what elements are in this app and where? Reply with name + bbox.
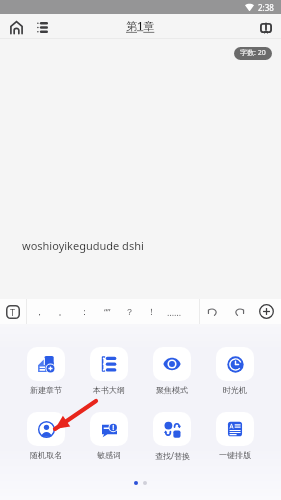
button[interactable]: 。 bbox=[52, 299, 72, 324]
staticText: 新建章节 bbox=[30, 385, 62, 395]
button[interactable]: ， bbox=[29, 299, 49, 324]
button[interactable]: 查找/替换 bbox=[153, 412, 191, 461]
staticText: ， bbox=[35, 306, 44, 317]
staticText: ？ bbox=[125, 306, 134, 317]
staticText: ： bbox=[80, 306, 89, 317]
button[interactable]: ： bbox=[74, 299, 94, 324]
button[interactable]: ！ bbox=[141, 299, 161, 324]
staticText: 字数: 20 bbox=[240, 48, 266, 58]
staticText: 随机取名 bbox=[30, 450, 62, 460]
button[interactable]: 新建章节 bbox=[27, 347, 65, 395]
staticText: 查找/替换 bbox=[155, 450, 190, 461]
staticText: 时光机 bbox=[223, 385, 247, 395]
button[interactable]: ？ bbox=[119, 299, 139, 324]
button[interactable]: 本书大纲 bbox=[90, 347, 128, 395]
staticText: 聚焦模式 bbox=[156, 385, 188, 395]
button[interactable]: 随机取名 bbox=[27, 412, 65, 460]
button[interactable]: Home bbox=[6, 17, 27, 38]
button[interactable]: Read mode bbox=[255, 17, 276, 38]
button[interactable]: 时光机 bbox=[216, 347, 254, 395]
staticText: 一键排版 bbox=[219, 450, 251, 460]
button[interactable]: 聚焦模式 bbox=[153, 347, 191, 395]
button[interactable]: More tools bbox=[252, 299, 281, 324]
button[interactable]: Undo bbox=[200, 299, 226, 324]
staticText: 敏感词 bbox=[97, 450, 121, 460]
button[interactable]: “” bbox=[97, 299, 117, 324]
button[interactable]: 一键排版 bbox=[216, 412, 254, 460]
staticText: …… bbox=[167, 306, 182, 318]
button[interactable]: 第1章 bbox=[126, 18, 155, 33]
staticText: T bbox=[10, 306, 16, 318]
staticText: ！ bbox=[147, 306, 156, 317]
button[interactable]: 敏感词 bbox=[90, 412, 128, 460]
staticText: 2:38 bbox=[258, 2, 274, 13]
button[interactable]: Text style bbox=[0, 299, 26, 324]
staticText: woshioyikegudude dshi bbox=[22, 238, 144, 253]
button[interactable]: 字数: 20 bbox=[234, 47, 272, 60]
staticText: “” bbox=[104, 306, 111, 318]
staticText: 本书大纲 bbox=[93, 385, 125, 395]
button[interactable]: Chapter list bbox=[32, 17, 53, 38]
staticText: 。 bbox=[58, 306, 67, 317]
button[interactable]: …… bbox=[164, 299, 184, 324]
button[interactable]: Redo bbox=[226, 299, 252, 324]
